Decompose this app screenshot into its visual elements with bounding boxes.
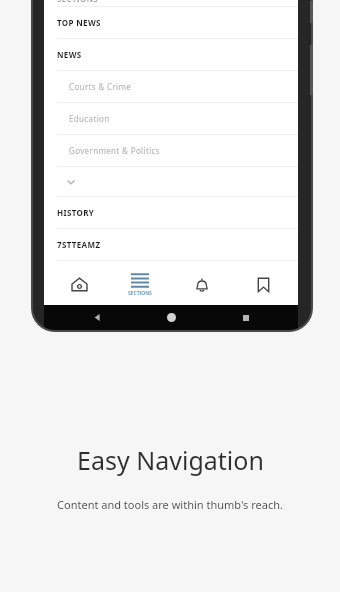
staticText: SECTIONS bbox=[128, 290, 152, 297]
button[interactable]: NEWS bbox=[44, 39, 298, 70]
staticText: 7STTEAMZ bbox=[57, 239, 101, 250]
button[interactable]: Education bbox=[44, 103, 298, 134]
button[interactable]: Recents bbox=[224, 305, 268, 330]
button[interactable]: Home bbox=[53, 264, 105, 305]
button[interactable]: Government & Politics bbox=[44, 135, 298, 166]
button[interactable]: SECTIONS bbox=[114, 264, 166, 305]
button[interactable]: Courts & Crime bbox=[44, 71, 298, 102]
staticText: Education bbox=[69, 113, 110, 124]
staticText: Government & Politics bbox=[69, 145, 160, 156]
button[interactable]: Bookmarks bbox=[237, 264, 289, 305]
staticText: Courts & Crime bbox=[69, 81, 132, 92]
staticText: Easy Navigation bbox=[77, 443, 264, 477]
button[interactable]: Notifications bbox=[176, 264, 228, 305]
button[interactable]: Home bbox=[149, 305, 193, 330]
button[interactable]: Back bbox=[75, 305, 119, 330]
staticText: Content and tools are within thumb's rea… bbox=[57, 497, 283, 512]
button[interactable]: HISTORY bbox=[44, 197, 298, 228]
button[interactable]: SECTIONS bbox=[44, 0, 298, 6]
staticText: NEWS bbox=[57, 49, 82, 60]
staticText: SECTIONS bbox=[57, 0, 98, 4]
button[interactable]: 7STTEAMZ bbox=[44, 229, 298, 260]
staticText: TOP NEWS bbox=[57, 17, 101, 28]
button[interactable]: TOP NEWS bbox=[44, 7, 298, 38]
staticText: HISTORY bbox=[57, 207, 95, 218]
